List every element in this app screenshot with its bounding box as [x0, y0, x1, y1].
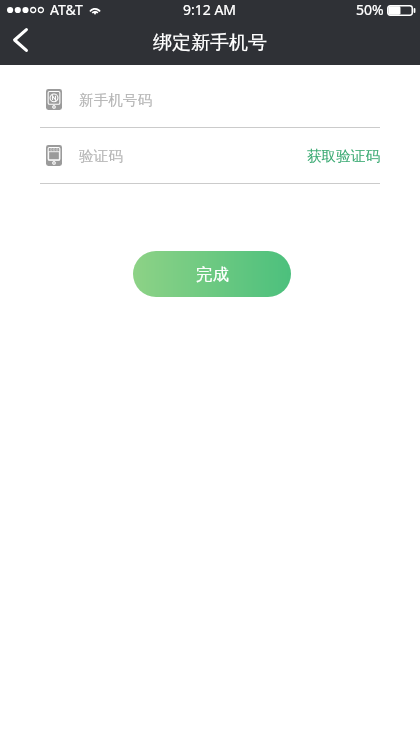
staticText: 50% — [356, 0, 384, 19]
staticText: 获取验证码 — [307, 147, 380, 165]
button[interactable]: 获取验证码 — [307, 147, 380, 165]
staticText: AT&T — [50, 0, 83, 19]
staticText: 验证码 — [79, 147, 123, 165]
button[interactable]: Back — [0, 24, 40, 55]
button[interactable]: 完成 — [133, 251, 291, 297]
staticText: 新手机号码 — [79, 91, 152, 109]
staticText: 完成 — [196, 264, 229, 285]
staticText: 9:12 AM — [183, 0, 237, 19]
staticText: 绑定新手机号 — [153, 31, 267, 55]
